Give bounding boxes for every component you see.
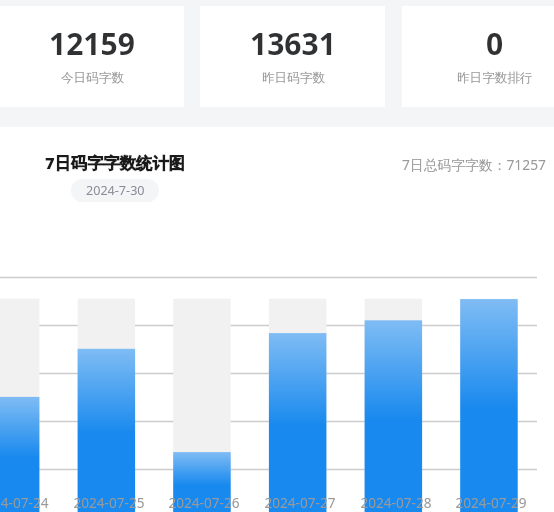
- staticText: 7日码字字数统计图: [45, 152, 185, 174]
- staticText: 2024-07-25: [64, 493, 154, 512]
- staticText: 7日总码字字数：71257: [402, 155, 546, 174]
- staticText: 昨日码字数: [262, 70, 325, 86]
- staticText: 2024-7-30: [86, 182, 145, 199]
- staticText: 2024-07-28: [351, 493, 441, 512]
- staticText: 昨日字数排行: [457, 70, 533, 86]
- staticText: 2024-07-27: [255, 493, 345, 512]
- button[interactable]: 0: [402, 6, 554, 107]
- staticText: 12159: [49, 23, 135, 64]
- button[interactable]: 12159: [0, 6, 184, 107]
- button[interactable]: 2024-7-30: [71, 179, 159, 202]
- staticText: 2024-07-26: [159, 493, 249, 512]
- staticText: 2024-07-29: [446, 493, 536, 512]
- button[interactable]: 13631: [200, 6, 385, 107]
- staticText: 今日码字数: [61, 70, 124, 86]
- staticText: 13631: [250, 23, 336, 64]
- staticText: 0: [486, 23, 504, 64]
- staticText: 2024-07-24: [0, 493, 58, 512]
